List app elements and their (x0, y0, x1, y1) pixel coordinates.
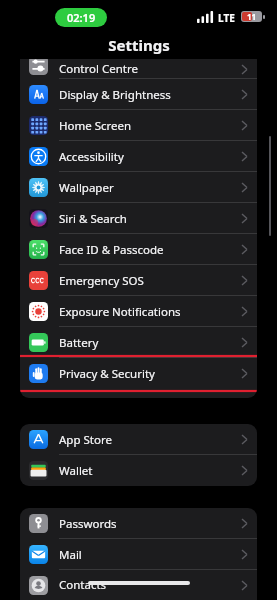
staticText: Mail (59, 547, 82, 563)
staticText: Exposure Notifications (59, 304, 181, 320)
staticText: Wallpaper (59, 180, 114, 196)
staticText: LTE (218, 11, 235, 25)
staticText: Home Screen (59, 118, 132, 134)
button[interactable]: Contacts (20, 570, 257, 600)
button[interactable]: Battery (20, 327, 257, 358)
button[interactable]: Home Screen (20, 110, 257, 141)
staticText: Control Centre (59, 61, 138, 77)
button[interactable]: Wallet (20, 455, 257, 486)
button[interactable]: Passwords (20, 508, 257, 539)
staticText: 11 (247, 11, 257, 22)
button[interactable]: Face ID & Passcode (20, 234, 257, 265)
button[interactable]: Privacy & Security (20, 358, 257, 389)
button[interactable]: Wallpaper (20, 172, 257, 203)
button[interactable]: Exposure Notifications (20, 296, 257, 327)
button[interactable]: Display & Brightness (20, 79, 257, 110)
staticText: Settings (108, 35, 170, 55)
button[interactable]: Control Centre (20, 59, 257, 79)
staticText: App Store (59, 432, 112, 448)
staticText: Emergency SOS (59, 273, 144, 289)
staticText: Battery (59, 335, 99, 351)
staticText: Face ID & Passcode (59, 242, 164, 258)
button[interactable]: Mail (20, 539, 257, 570)
staticText: Display & Brightness (59, 87, 171, 103)
button[interactable]: Emergency SOS (20, 265, 257, 296)
staticText: 02:19 (67, 10, 96, 25)
button[interactable]: Accessibility (20, 141, 257, 172)
staticText: Contacts (59, 577, 107, 593)
staticText: Passwords (59, 516, 117, 532)
staticText: Wallet (59, 463, 93, 479)
staticText: Privacy & Security (59, 366, 155, 382)
button[interactable]: App Store (20, 424, 257, 455)
button[interactable]: Siri & Search (20, 203, 257, 234)
staticText: Accessibility (59, 149, 124, 165)
staticText: Siri & Search (59, 211, 127, 227)
